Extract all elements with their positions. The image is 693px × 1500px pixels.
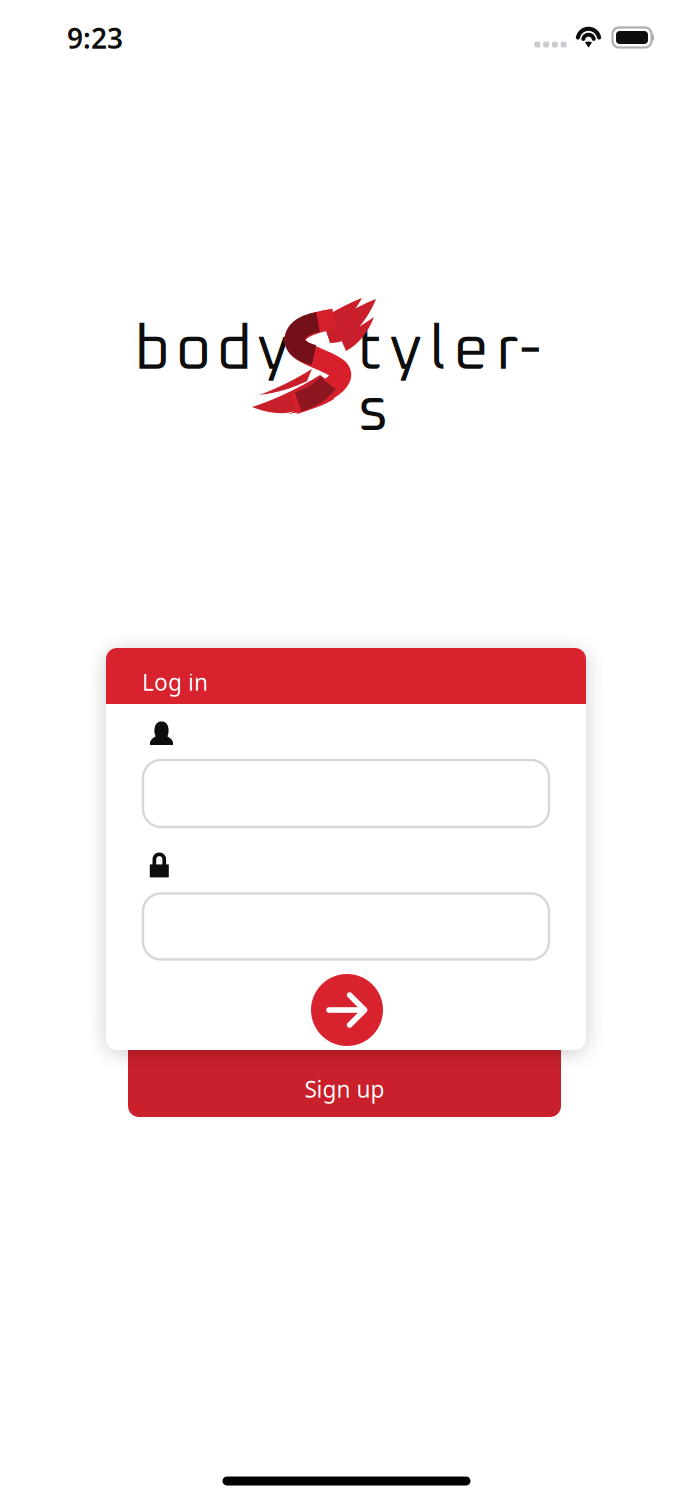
- staticText: Log in: [142, 667, 208, 697]
- button[interactable]: Sign up: [128, 997, 561, 1117]
- staticText: Sign up: [304, 1074, 384, 1104]
- staticText: body: [134, 320, 289, 382]
- staticText: tylers: [358, 320, 558, 382]
- button[interactable]: Log in: [311, 974, 383, 1046]
- staticText: 9:23: [67, 19, 123, 57]
